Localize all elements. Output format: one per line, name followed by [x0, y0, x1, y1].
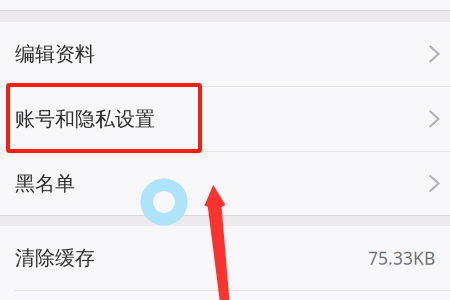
- button[interactable]: 账号和隐私设置: [0, 87, 450, 151]
- staticText: 黑名单: [15, 171, 75, 196]
- staticText: 清除缓存: [15, 246, 95, 270]
- button[interactable]: 编辑资料: [0, 22, 450, 86]
- button[interactable]: 清除缓存: [0, 226, 450, 290]
- button[interactable]: 黑名单: [0, 152, 450, 215]
- staticText: 编辑资料: [15, 42, 95, 66]
- staticText: 75.33KB: [368, 246, 435, 269]
- staticText: 账号和隐私设置: [15, 107, 155, 131]
